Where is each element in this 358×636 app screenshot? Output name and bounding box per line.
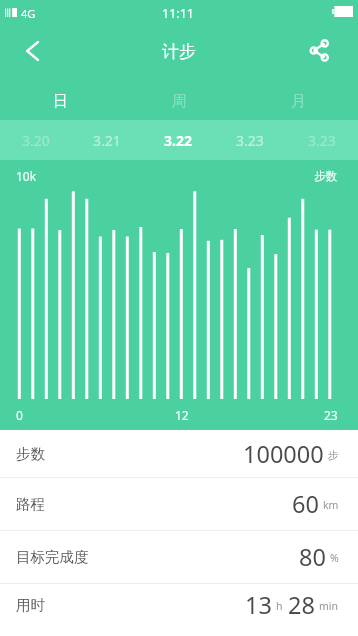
staticText: 3.22 <box>164 131 192 150</box>
button[interactable]: 3.20 <box>0 120 71 160</box>
staticText: 3.20 <box>22 131 50 150</box>
button[interactable]: 步数 <box>0 430 358 477</box>
staticText: 23 <box>324 407 338 423</box>
staticText: 11:11 <box>162 5 194 22</box>
button[interactable]: 月 <box>239 79 358 123</box>
staticText: 12 <box>175 407 189 423</box>
staticText: 路程 <box>16 495 45 513</box>
staticText: 60 <box>292 488 319 520</box>
staticText: 3.23 <box>236 131 264 150</box>
staticText: 13 <box>245 589 272 621</box>
button[interactable]: Share <box>297 28 341 72</box>
button[interactable]: 3.23 <box>214 120 286 160</box>
staticText: 0 <box>16 407 23 423</box>
staticText: 10k <box>16 168 37 184</box>
staticText: 周 <box>172 92 187 111</box>
button[interactable]: 3.22 <box>142 120 214 160</box>
button[interactable]: Back <box>8 27 56 75</box>
button[interactable]: 周 <box>120 79 239 123</box>
staticText: 步 <box>328 449 339 462</box>
button[interactable]: 用时 <box>0 584 358 626</box>
staticText: 月 <box>291 92 306 111</box>
button[interactable]: 路程 <box>0 478 358 530</box>
button[interactable]: 3.21 <box>71 120 142 160</box>
button[interactable]: 目标完成度 <box>0 531 358 583</box>
staticText: 计步 <box>162 41 196 62</box>
button[interactable]: 日 <box>0 79 120 123</box>
staticText: 28 <box>288 589 315 621</box>
staticText: 3.21 <box>93 131 121 150</box>
staticText: 80 <box>299 541 326 573</box>
staticText: 步数 <box>16 445 45 463</box>
staticText: km <box>323 498 339 512</box>
staticText: 目标完成度 <box>16 548 89 566</box>
staticText: 步数 <box>314 169 337 183</box>
staticText: min <box>319 599 339 613</box>
staticText: 用时 <box>16 596 45 614</box>
staticText: 4G <box>21 6 36 21</box>
staticText: % <box>330 551 339 565</box>
staticText: 日 <box>53 92 68 111</box>
button[interactable]: 3.23 <box>286 120 358 160</box>
staticText: 3.23 <box>308 131 336 150</box>
staticText: 100000 <box>243 438 324 470</box>
staticText: h <box>276 599 283 613</box>
